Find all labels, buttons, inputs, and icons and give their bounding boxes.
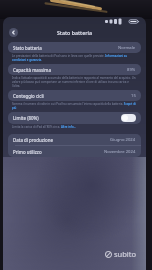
staticText: Le prestazioni della batteria di iPad so… bbox=[12, 54, 137, 62]
staticText: Limita la carica di iPad all'80% circa. … bbox=[12, 125, 77, 129]
staticText: Indica l'attuale capacità di accumulo de… bbox=[12, 76, 137, 88]
staticText: Capacità massima bbox=[13, 67, 52, 73]
staticText: 15 bbox=[131, 93, 136, 99]
button[interactable]: Stato batteria bbox=[8, 42, 141, 53]
staticText: Data di produzione bbox=[13, 137, 53, 143]
staticText: Novembre 2024 bbox=[104, 149, 136, 155]
staticText: Conteggio cicli bbox=[13, 93, 44, 99]
staticText: Normale bbox=[118, 45, 136, 51]
staticText: subito bbox=[114, 249, 137, 259]
staticText: Stato batteria bbox=[13, 45, 42, 51]
staticText: Stato batteria bbox=[57, 29, 92, 36]
staticText: Somma il numero di volte in cui iPad ha … bbox=[12, 102, 137, 110]
button[interactable]: Conteggio cicli bbox=[8, 90, 141, 101]
button[interactable]: Data di produzione bbox=[8, 134, 141, 145]
staticText: Giugno 2024 bbox=[110, 137, 136, 143]
button[interactable]: Limite (80%) bbox=[8, 112, 141, 124]
staticText: Primo utilizzo bbox=[13, 149, 42, 155]
button[interactable]: Capacità massima bbox=[8, 64, 141, 75]
other: Limite 80 percento bbox=[121, 114, 136, 122]
staticText: Limite (80%) bbox=[13, 115, 39, 121]
staticText: 89% bbox=[127, 67, 136, 73]
button[interactable]: Indietro bbox=[9, 28, 18, 37]
button[interactable]: Primo utilizzo bbox=[8, 146, 141, 157]
